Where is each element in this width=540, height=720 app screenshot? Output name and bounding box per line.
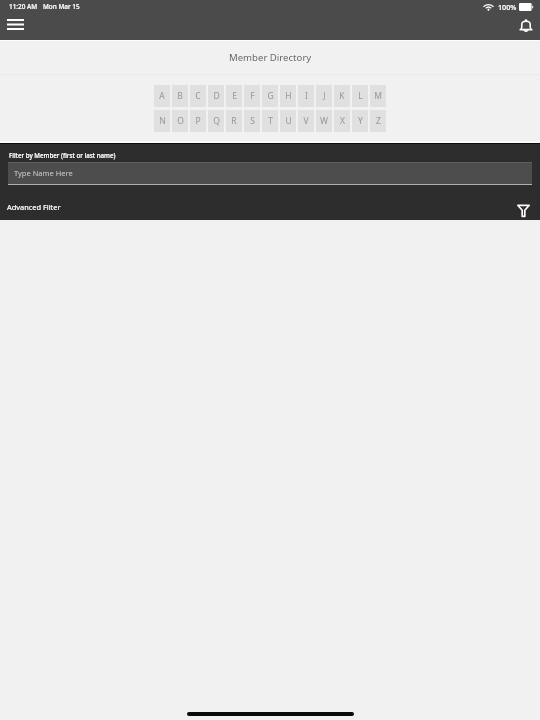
staticText: T bbox=[268, 115, 273, 127]
staticText: X bbox=[340, 115, 345, 127]
button[interactable]: T bbox=[262, 110, 278, 132]
staticText: 11:20 AM bbox=[9, 2, 38, 11]
staticText: N bbox=[159, 115, 166, 127]
button[interactable]: G bbox=[262, 85, 278, 107]
button[interactable]: Type Name Here bbox=[8, 162, 532, 184]
staticText: B bbox=[177, 90, 183, 102]
button[interactable]: P bbox=[190, 110, 206, 132]
button[interactable]: Y bbox=[352, 110, 368, 132]
staticText: J bbox=[323, 90, 326, 102]
staticText: H bbox=[285, 90, 292, 102]
staticText: K bbox=[339, 90, 345, 102]
staticText: O bbox=[177, 115, 184, 127]
button[interactable]: M bbox=[370, 85, 386, 107]
button[interactable]: H bbox=[280, 85, 296, 107]
staticText: W bbox=[320, 115, 328, 127]
staticText: M bbox=[374, 90, 382, 102]
staticText: D bbox=[213, 90, 220, 102]
staticText: F bbox=[250, 90, 255, 102]
staticText: U bbox=[285, 115, 292, 127]
button[interactable]: B bbox=[172, 85, 188, 107]
button[interactable]: U bbox=[280, 110, 296, 132]
button[interactable]: D bbox=[208, 85, 224, 107]
button[interactable]: A bbox=[154, 85, 170, 107]
button[interactable]: L bbox=[352, 85, 368, 107]
button[interactable]: C bbox=[190, 85, 206, 107]
staticText: I bbox=[305, 90, 308, 102]
staticText: Advanced Filter bbox=[7, 202, 61, 212]
staticText: S bbox=[250, 115, 255, 127]
staticText: 100% bbox=[498, 2, 517, 12]
button[interactable]: R bbox=[226, 110, 242, 132]
button[interactable]: F bbox=[244, 85, 260, 107]
button[interactable]: Menu bbox=[1, 16, 30, 32]
staticText: Member Directory bbox=[229, 51, 312, 64]
button[interactable]: W bbox=[316, 110, 332, 132]
button[interactable]: Filter bbox=[513, 200, 533, 220]
staticText: Q bbox=[213, 115, 220, 127]
staticText: V bbox=[303, 115, 309, 127]
staticText: A bbox=[159, 90, 165, 102]
button[interactable]: Notifications bbox=[515, 15, 537, 37]
button[interactable]: I bbox=[298, 85, 314, 107]
button[interactable]: N bbox=[154, 110, 170, 132]
staticText: Mon Mar 15 bbox=[43, 2, 80, 11]
staticText: R bbox=[231, 115, 237, 127]
staticText: Z bbox=[376, 115, 381, 127]
button[interactable]: O bbox=[172, 110, 188, 132]
staticText: E bbox=[232, 90, 237, 102]
staticText: Filter by Member (first or last name) bbox=[9, 151, 116, 159]
button[interactable]: S bbox=[244, 110, 260, 132]
staticText: Type Name Here bbox=[14, 168, 73, 178]
staticText: P bbox=[195, 115, 201, 127]
staticText: L bbox=[358, 90, 363, 102]
button[interactable]: X bbox=[334, 110, 350, 132]
button[interactable]: V bbox=[298, 110, 314, 132]
button[interactable]: K bbox=[334, 85, 350, 107]
button[interactable]: Z bbox=[370, 110, 386, 132]
button[interactable]: J bbox=[316, 85, 332, 107]
button[interactable]: Q bbox=[208, 110, 224, 132]
staticText: C bbox=[195, 90, 201, 102]
staticText: G bbox=[267, 90, 274, 102]
button[interactable]: E bbox=[226, 85, 242, 107]
staticText: Y bbox=[358, 115, 363, 127]
